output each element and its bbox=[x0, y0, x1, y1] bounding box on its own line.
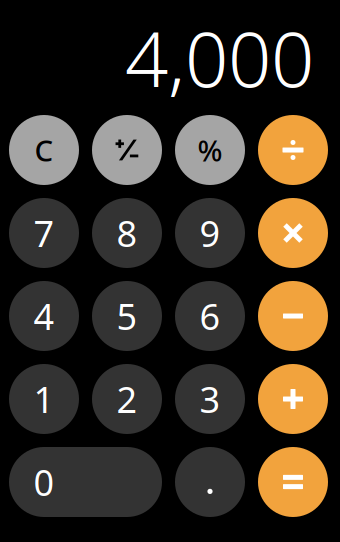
button[interactable]: 1 bbox=[3, 364, 84, 434]
button[interactable]: C bbox=[3, 115, 84, 185]
button[interactable]: Equals bbox=[252, 447, 333, 517]
staticText: 0 bbox=[33, 458, 54, 506]
staticText: 9 bbox=[199, 209, 220, 257]
button[interactable]: 9 bbox=[169, 198, 250, 268]
staticText: 4,000 bbox=[125, 7, 314, 108]
staticText: C bbox=[34, 130, 53, 169]
staticText: 8 bbox=[116, 209, 137, 257]
button[interactable]: 2 bbox=[86, 364, 167, 434]
button[interactable]: 0 bbox=[3, 447, 167, 517]
button[interactable]: 7 bbox=[3, 198, 84, 268]
staticText: 5 bbox=[116, 292, 137, 340]
staticText: 6 bbox=[199, 292, 220, 340]
button[interactable]: Divide bbox=[252, 115, 333, 185]
button[interactable]: Decimal point bbox=[169, 447, 250, 517]
button[interactable]: 4 bbox=[3, 281, 84, 351]
staticText: % bbox=[197, 130, 222, 169]
staticText: 4 bbox=[33, 292, 54, 340]
staticText: 1 bbox=[33, 375, 54, 423]
button[interactable]: Plus minus bbox=[86, 115, 167, 185]
button[interactable]: % bbox=[169, 115, 250, 185]
button[interactable]: Plus bbox=[252, 364, 333, 434]
button[interactable]: 3 bbox=[169, 364, 250, 434]
staticText: 3 bbox=[199, 375, 220, 423]
staticText: 2 bbox=[116, 375, 137, 423]
button[interactable]: 5 bbox=[86, 281, 167, 351]
staticText: 7 bbox=[33, 209, 54, 257]
button[interactable]: Minus bbox=[252, 281, 333, 351]
button[interactable]: Multiply bbox=[252, 198, 333, 268]
button[interactable]: 8 bbox=[86, 198, 167, 268]
button[interactable]: 6 bbox=[169, 281, 250, 351]
